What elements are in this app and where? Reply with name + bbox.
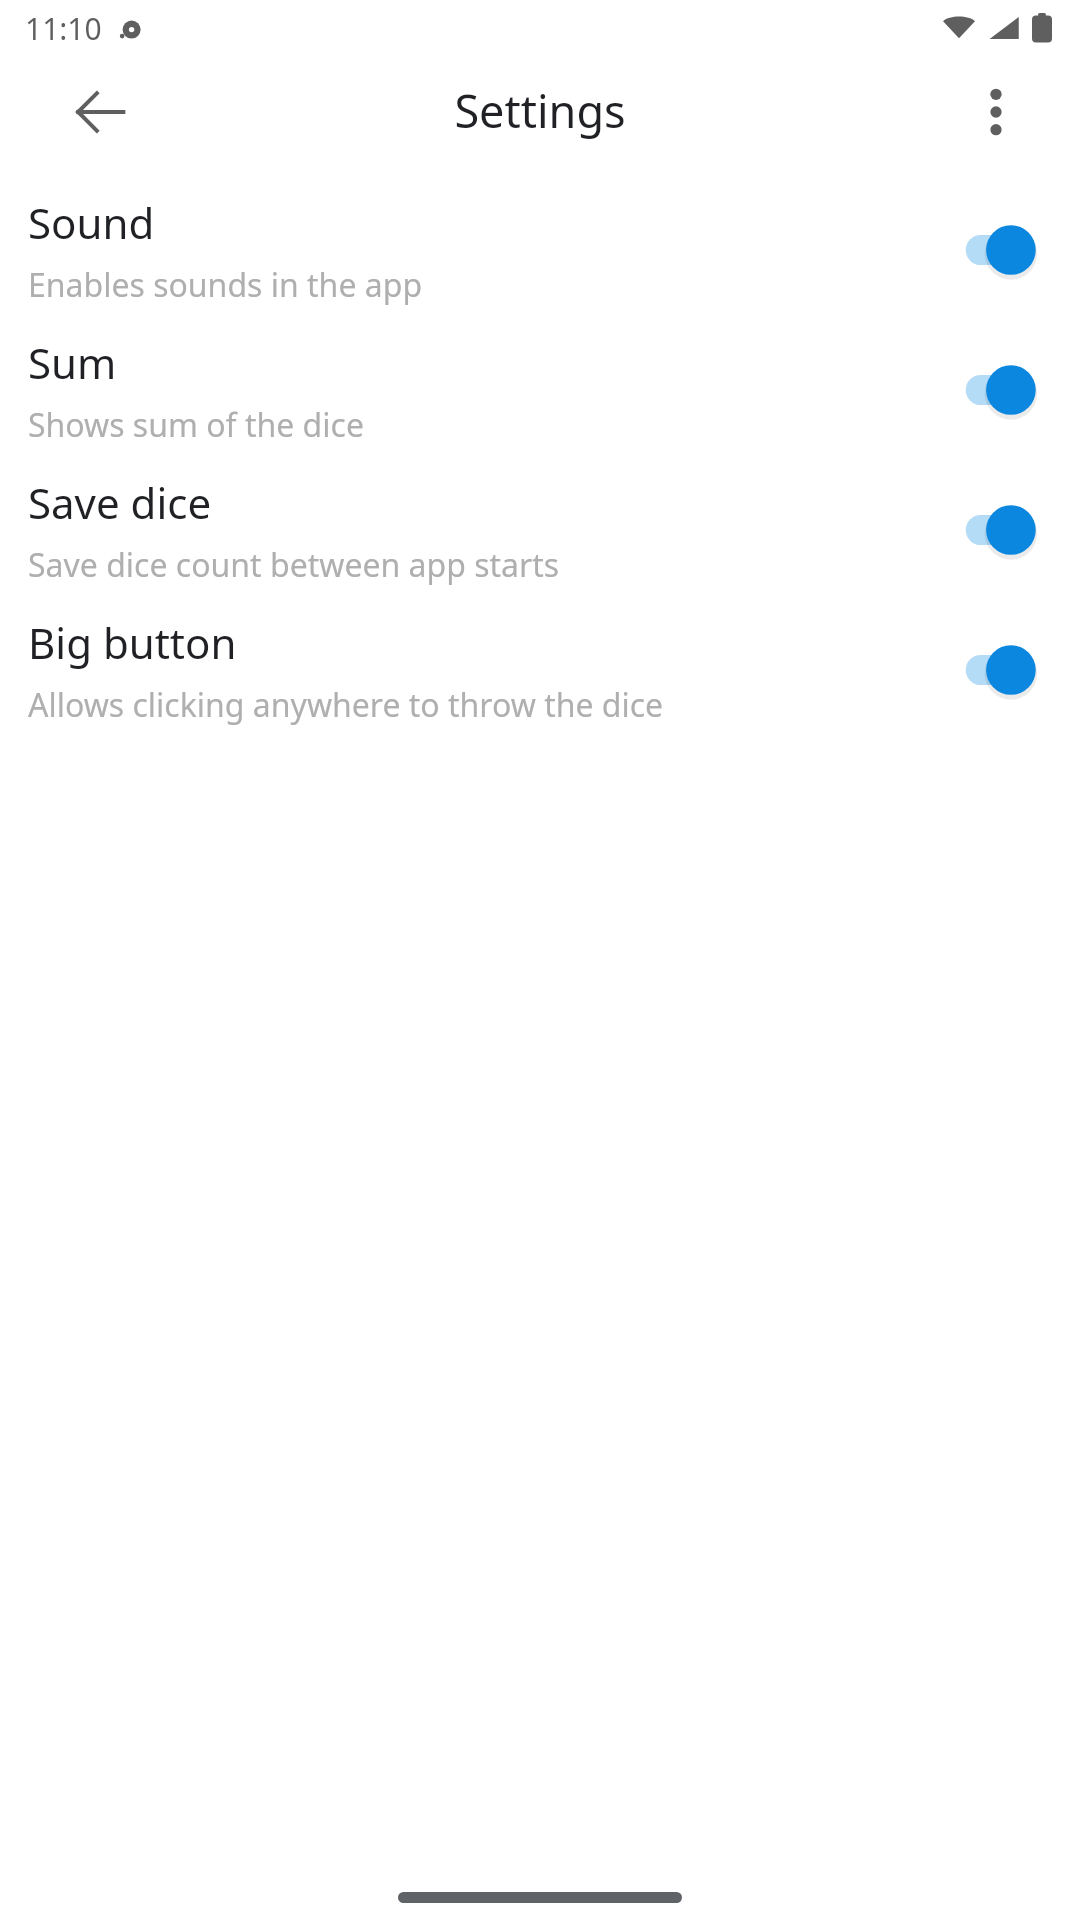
- staticText: Save dice count between app starts: [28, 543, 560, 587]
- staticText: Settings: [454, 80, 626, 141]
- staticText: Enables sounds in the app: [28, 263, 423, 307]
- staticText: Big button: [28, 614, 237, 671]
- button[interactable]: Save dice: [0, 460, 1080, 600]
- staticText: Shows sum of the dice: [28, 403, 364, 447]
- button[interactable]: Sum: [0, 320, 1080, 460]
- button[interactable]: Back: [52, 64, 148, 160]
- button[interactable]: Sound: [0, 180, 1080, 320]
- button[interactable]: More options: [948, 64, 1044, 160]
- button[interactable]: Toggle: [964, 634, 1052, 706]
- staticText: Save dice: [28, 474, 212, 531]
- button[interactable]: Toggle: [964, 494, 1052, 566]
- staticText: Sound: [28, 194, 155, 251]
- staticText: Allows clicking anywhere to throw the di…: [28, 683, 664, 727]
- button[interactable]: Toggle: [964, 354, 1052, 426]
- staticText: 11:10: [25, 8, 102, 49]
- button[interactable]: Toggle: [964, 214, 1052, 286]
- staticText: Sum: [28, 334, 117, 391]
- button[interactable]: Big button: [0, 600, 1080, 740]
